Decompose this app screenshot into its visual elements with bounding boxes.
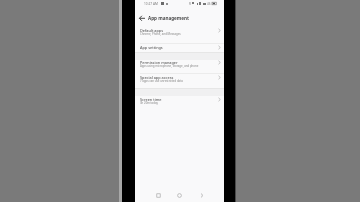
button[interactable]: Default apps: [135, 28, 224, 40]
staticText: App management: [148, 15, 189, 21]
staticText: Permission manager: [140, 60, 178, 65]
button[interactable]: Screen time: [135, 97, 224, 109]
button[interactable]: Special app access: [135, 75, 224, 88]
staticText: Apps using microphone, storage, and phon…: [140, 64, 199, 68]
staticText: Screen time: [140, 97, 162, 102]
staticText: 7 apps can use unrestricted data: [140, 79, 183, 83]
staticText: Special app access: [140, 75, 174, 80]
staticText: App settings: [140, 45, 163, 50]
button[interactable]: [197, 192, 204, 199]
staticText: R: [189, 2, 191, 6]
staticText: Default apps: [140, 28, 164, 33]
button[interactable]: [137, 14, 147, 23]
button[interactable]: Permission manager: [135, 60, 224, 73]
staticText: 46: [207, 2, 211, 6]
staticText: 3h 20m today: [140, 101, 159, 105]
staticText: 10:27 AM: [144, 2, 158, 6]
staticText: Chrome, Phone, and Messages: [140, 32, 181, 36]
button[interactable]: App settings: [135, 45, 224, 52]
button[interactable]: [176, 192, 183, 199]
button[interactable]: [155, 192, 162, 199]
